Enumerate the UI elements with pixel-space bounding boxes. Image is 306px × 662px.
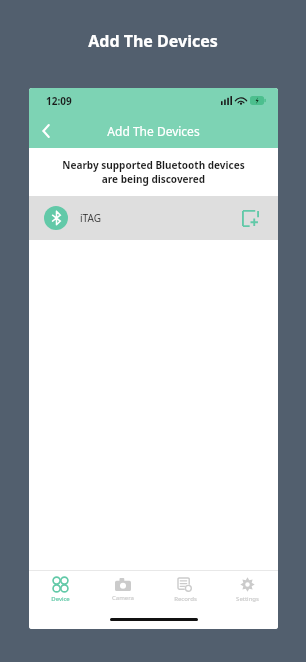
staticText: Add The Devices — [88, 30, 218, 52]
button[interactable]: Back — [29, 114, 63, 148]
staticText: Settings — [236, 595, 259, 603]
button[interactable]: Camera — [92, 571, 154, 609]
button[interactable]: Device — [29, 571, 92, 609]
button[interactable]: iTAG — [29, 196, 278, 240]
staticText: Nearby supported Bluetooth devices are b… — [29, 158, 278, 186]
button[interactable]: Settings — [216, 571, 278, 609]
button[interactable]: Add device — [237, 205, 263, 231]
staticText: Device — [51, 595, 70, 603]
button[interactable]: Records — [154, 571, 216, 609]
staticText: Records — [174, 595, 197, 603]
staticText: 12:09 — [46, 94, 72, 108]
staticText: iTAG — [80, 211, 101, 225]
staticText: Add The Devices — [107, 123, 200, 139]
staticText: Camera — [112, 594, 134, 602]
